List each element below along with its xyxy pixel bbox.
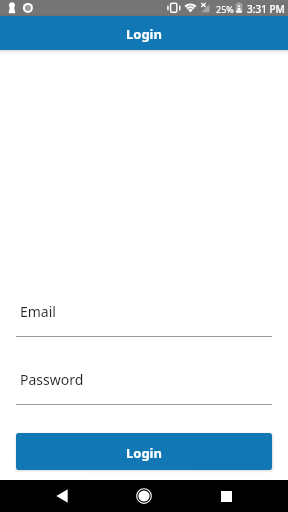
staticText: Password (20, 370, 84, 389)
staticText: 3:31 PM (247, 2, 285, 16)
button[interactable]: Back (45, 480, 78, 512)
staticText: Login (126, 25, 162, 43)
button[interactable]: Login (16, 433, 272, 470)
staticText: Email (20, 302, 56, 321)
button[interactable]: Recent apps (210, 480, 243, 512)
staticText: Login (126, 444, 162, 462)
button[interactable]: Home (127, 480, 160, 512)
staticText: 25% (216, 3, 234, 15)
